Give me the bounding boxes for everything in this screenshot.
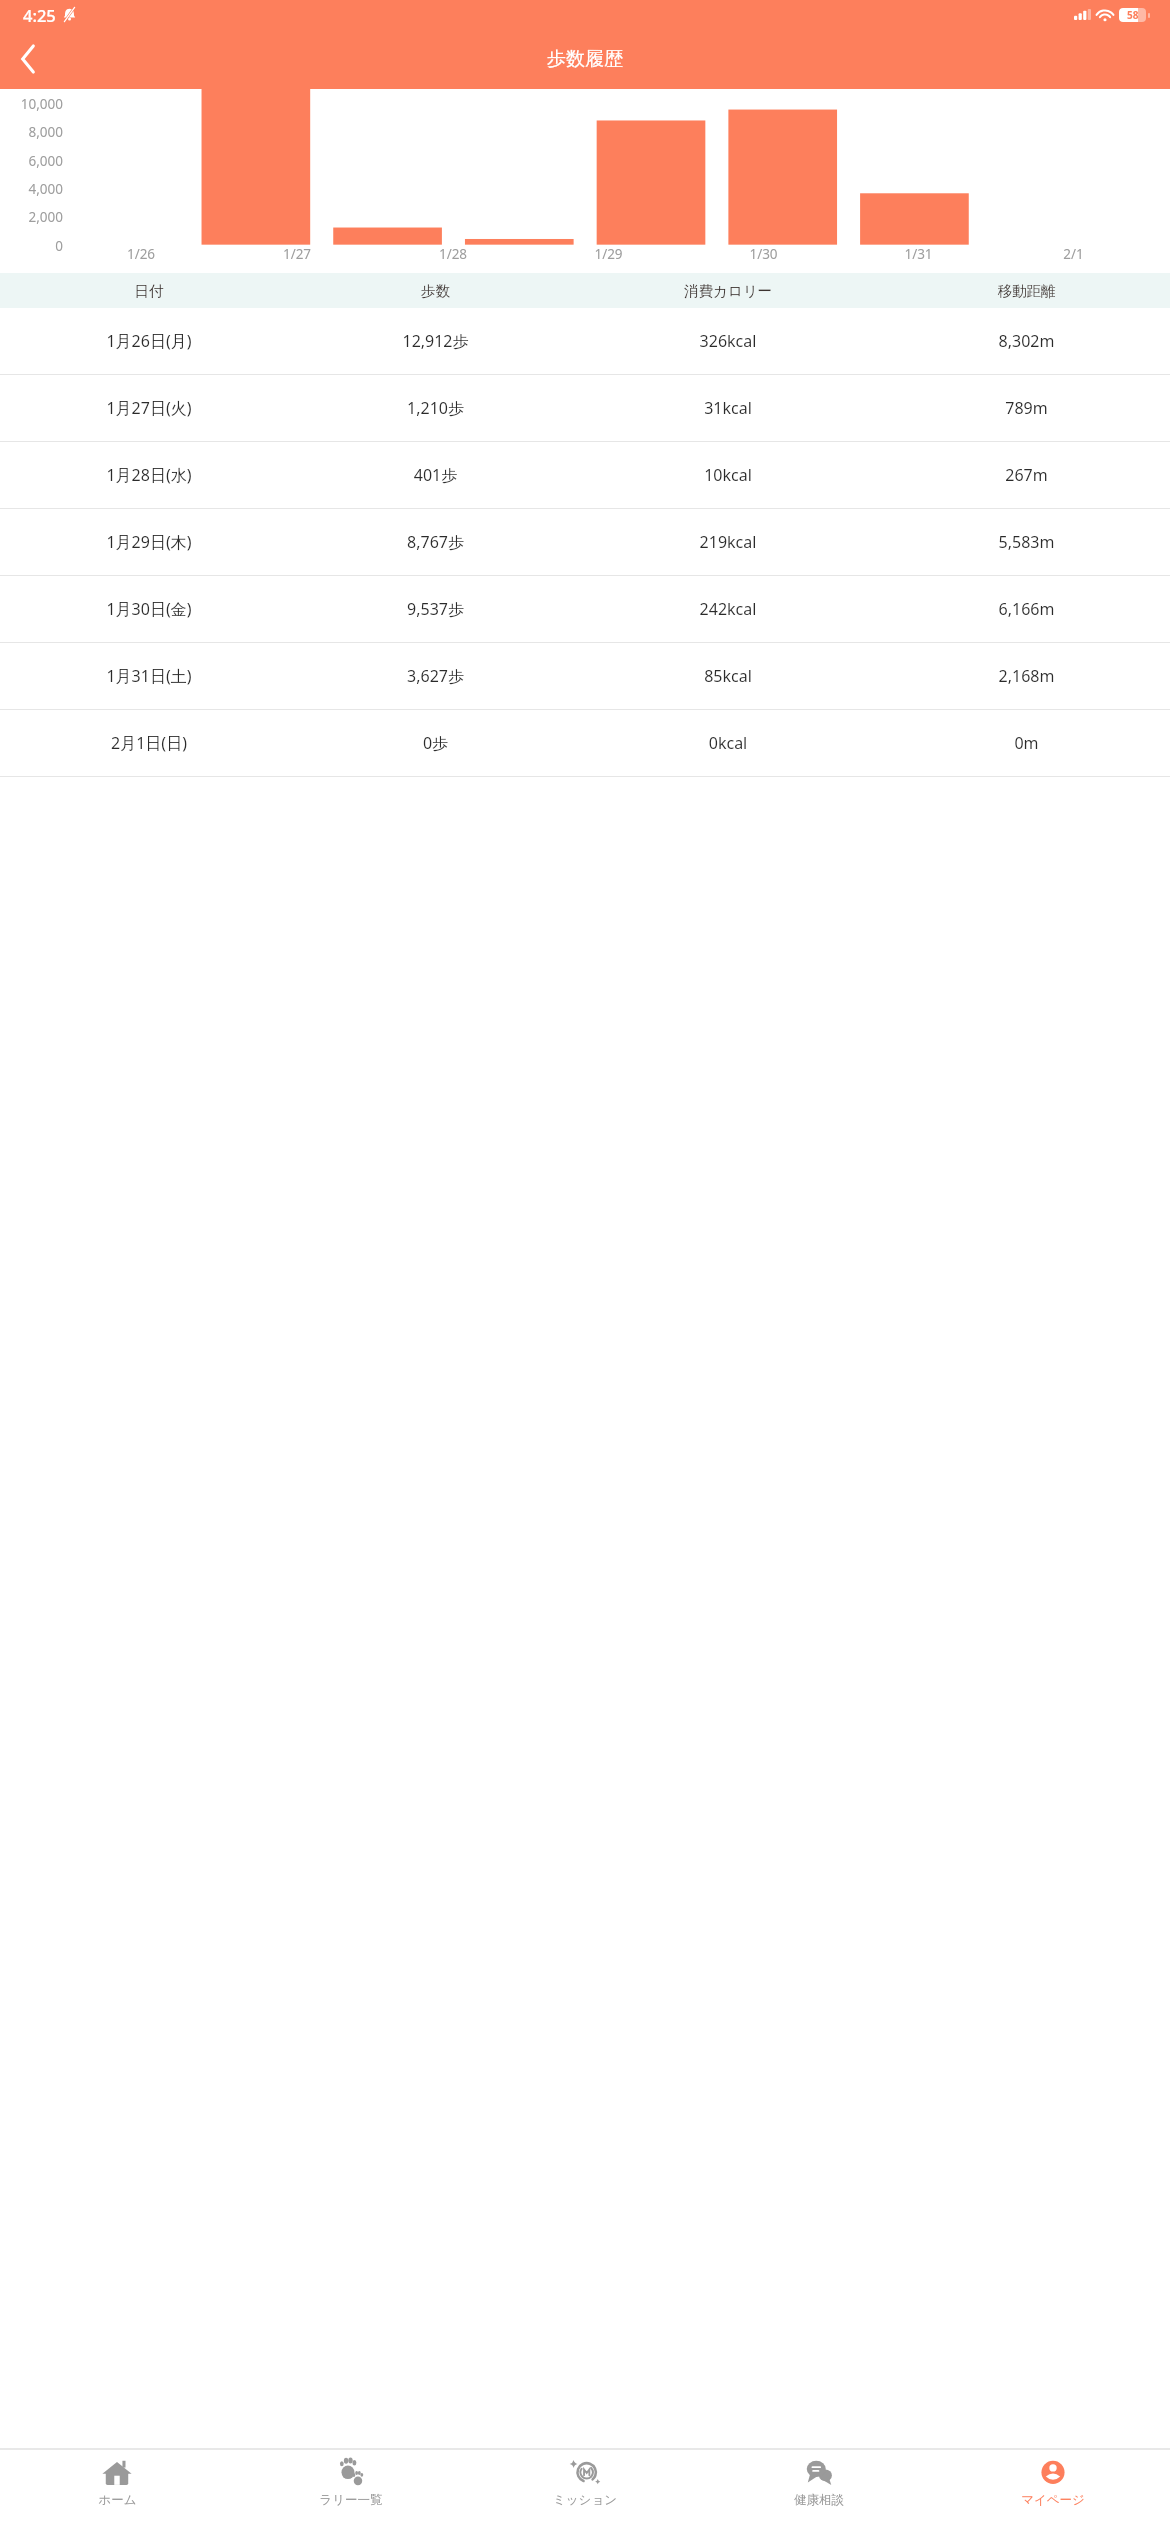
staticText: 242kcal: [573, 598, 883, 620]
staticText: 1月26日(月): [0, 330, 298, 352]
staticText: 1/27: [219, 245, 375, 263]
button[interactable]: マイページ: [936, 2450, 1170, 2532]
button[interactable]: Back: [0, 31, 56, 87]
staticText: 1月28日(水): [0, 464, 298, 486]
staticText: 1/31: [841, 245, 996, 263]
staticText: マイページ: [1021, 2492, 1085, 2508]
staticText: 1/26: [63, 245, 219, 263]
staticText: 267m: [883, 464, 1170, 486]
staticText: 326kcal: [573, 330, 883, 352]
staticText: 5,583m: [883, 531, 1170, 553]
staticText: 移動距離: [883, 282, 1170, 300]
staticText: 6,166m: [883, 598, 1170, 620]
button[interactable]: 健康相談: [702, 2450, 936, 2532]
button[interactable]: 1月27日(火): [0, 375, 1170, 441]
staticText: 9,537歩: [298, 598, 573, 620]
staticText: 0歩: [298, 732, 573, 754]
staticText: 1/29: [531, 245, 686, 263]
staticText: 歩数履歴: [547, 47, 623, 71]
staticText: 31kcal: [573, 397, 883, 419]
staticText: 8,302m: [883, 330, 1170, 352]
button[interactable]: 1月31日(土): [0, 643, 1170, 709]
staticText: 0: [0, 237, 63, 255]
staticText: 1月27日(火): [0, 397, 298, 419]
staticText: ホーム: [98, 2492, 137, 2508]
staticText: 2/1: [996, 245, 1151, 263]
staticText: 6,000: [0, 152, 63, 170]
staticText: 789m: [883, 397, 1170, 419]
staticText: 0m: [883, 732, 1170, 754]
button[interactable]: 1月28日(水): [0, 442, 1170, 508]
button[interactable]: ミッション: [468, 2450, 702, 2532]
staticText: 0kcal: [573, 732, 883, 754]
staticText: 1/28: [375, 245, 531, 263]
button[interactable]: 1月26日(月): [0, 308, 1170, 374]
button[interactable]: 1月30日(金): [0, 576, 1170, 642]
staticText: 2,168m: [883, 665, 1170, 687]
staticText: 2月1日(日): [0, 732, 298, 754]
staticText: ラリー一覧: [319, 2492, 383, 2508]
staticText: 85kcal: [573, 665, 883, 687]
staticText: 4:25: [23, 4, 56, 26]
staticText: 4,000: [0, 180, 63, 198]
staticText: 1月30日(金): [0, 598, 298, 620]
staticText: 健康相談: [794, 2492, 844, 2508]
staticText: 2,000: [0, 208, 63, 226]
button[interactable]: 1月29日(木): [0, 509, 1170, 575]
staticText: 12,912歩: [298, 330, 573, 352]
staticText: ミッション: [553, 2492, 617, 2508]
staticText: 10kcal: [573, 464, 883, 486]
staticText: 8,767歩: [298, 531, 573, 553]
staticText: 10,000: [0, 95, 63, 113]
button[interactable]: ホーム: [0, 2450, 234, 2532]
staticText: 消費カロリー: [573, 282, 883, 300]
staticText: 8,000: [0, 123, 63, 141]
button[interactable]: ラリー一覧: [234, 2450, 468, 2532]
staticText: 1月29日(木): [0, 531, 298, 553]
staticText: 58: [1127, 8, 1139, 22]
staticText: 219kcal: [573, 531, 883, 553]
button[interactable]: 2月1日(日): [0, 710, 1170, 776]
staticText: 401歩: [298, 464, 573, 486]
staticText: 1/30: [686, 245, 841, 263]
staticText: 3,627歩: [298, 665, 573, 687]
staticText: 歩数: [298, 282, 573, 300]
staticText: 日付: [0, 282, 298, 300]
staticText: 1,210歩: [298, 397, 573, 419]
staticText: 1月31日(土): [0, 665, 298, 687]
